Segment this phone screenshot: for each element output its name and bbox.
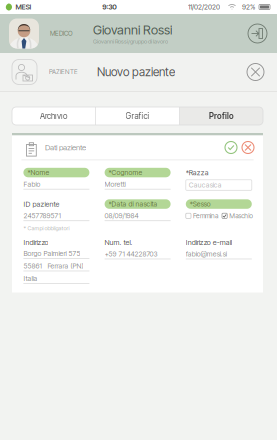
staticText: 9:30 (102, 3, 117, 11)
staticText: Moretti (105, 180, 126, 188)
staticText: Grafici (125, 111, 149, 121)
staticText: *Sesso (190, 200, 211, 208)
staticText: MESI (15, 3, 31, 11)
staticText: *Nome (27, 168, 49, 177)
staticText: 08/09/1984 (105, 212, 139, 220)
staticText: 55861 Ferrara (PN) (23, 262, 83, 270)
staticText: 11/02/2020 (188, 3, 220, 11)
staticText: Nuovo paziente (97, 65, 175, 79)
button[interactable]: Profilo (180, 107, 263, 125)
staticText: Dati paziente (45, 143, 86, 152)
button[interactable]: Chiudi (244, 60, 267, 83)
staticText: Maschio (229, 212, 253, 220)
staticText: *Data di nascita (109, 200, 158, 208)
button[interactable]: Archivio (12, 107, 95, 125)
staticText: Indirizzo (23, 238, 48, 247)
staticText: * Campi obbligatori (23, 225, 69, 232)
staticText: ID paziente (23, 200, 59, 208)
staticText: *Razza (186, 168, 209, 177)
staticText: Archivio (40, 111, 67, 121)
staticText: Indirizzo e-mail (186, 238, 232, 247)
staticText: Profilo (209, 111, 234, 121)
staticText: +59 71 44228703 (105, 250, 158, 258)
staticText: MEDICO (50, 30, 73, 37)
button[interactable]: Grafici (96, 107, 179, 125)
staticText: PAZIENTE (49, 68, 78, 76)
staticText: Femmina (193, 212, 218, 220)
staticText: Fabio (23, 180, 40, 188)
button[interactable]: Salva (225, 141, 237, 153)
button[interactable]: Esci (245, 21, 270, 46)
staticText: Num. tel. (105, 238, 133, 247)
staticText: Italia (23, 274, 37, 283)
staticText: fabio@mesi.si (186, 250, 227, 258)
button[interactable]: Annulla (242, 141, 254, 153)
staticText: 92% (242, 3, 255, 11)
staticText: *Cognome (109, 168, 143, 177)
staticText: Borgo Palmieri 575 (23, 249, 80, 258)
staticText: Caucasica (189, 181, 222, 189)
staticText: Giovanni Rossi (93, 22, 172, 37)
staticText: 2457789571 (23, 212, 60, 220)
staticText: Giovanni Rossi/gruppo di lavoro (93, 38, 168, 45)
